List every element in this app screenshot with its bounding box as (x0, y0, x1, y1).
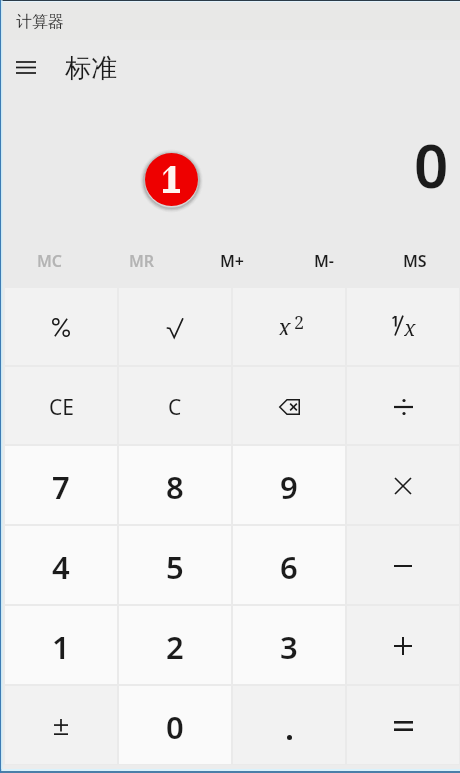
button[interactable]: 7 (5, 446, 117, 524)
button[interactable]: M- (278, 230, 369, 287)
button[interactable]: Decimal point (233, 686, 345, 764)
button[interactable]: C (119, 367, 231, 444)
button[interactable]: CE (5, 367, 117, 444)
button[interactable]: Plus (347, 606, 459, 684)
button[interactable]: 0 (119, 686, 231, 764)
staticText: 0 (414, 124, 449, 206)
staticText: 8 (166, 466, 184, 508)
staticText: 计算器 (16, 12, 64, 32)
button[interactable]: 5 (119, 526, 231, 604)
button[interactable]: 8 (119, 446, 231, 524)
staticText: MS (403, 250, 427, 272)
button[interactable]: Multiply (347, 446, 459, 524)
button[interactable]: Square root (119, 288, 231, 365)
button[interactable]: x squared (233, 288, 345, 365)
staticText: C (168, 393, 182, 422)
button[interactable]: 1 (5, 606, 117, 684)
staticText: 3 (280, 626, 298, 668)
staticText: 标准 (65, 52, 117, 85)
staticText: 7 (52, 466, 70, 508)
button[interactable]: One over x (347, 288, 459, 365)
staticText: M+ (220, 250, 245, 272)
staticText: 2 (166, 626, 184, 668)
button[interactable]: Percent (5, 288, 117, 365)
staticText: 0 (166, 706, 184, 748)
button[interactable]: Minus (347, 526, 459, 604)
button[interactable]: Menu (6, 48, 46, 86)
button[interactable]: Backspace (233, 367, 345, 444)
staticText: M- (314, 250, 334, 272)
staticText: 2 (294, 310, 305, 334)
button[interactable]: MC (4, 230, 96, 287)
button[interactable]: 3 (233, 606, 345, 684)
staticText: MR (129, 250, 155, 272)
button[interactable]: MR (96, 230, 187, 287)
staticText: 9 (280, 466, 298, 508)
staticText: 5 (166, 546, 184, 588)
staticText: x (404, 314, 416, 336)
button[interactable]: Plus minus (5, 686, 117, 764)
button[interactable]: Divide (347, 367, 459, 444)
button[interactable]: 9 (233, 446, 345, 524)
staticText: 1 (52, 626, 70, 668)
button[interactable]: M+ (187, 230, 278, 287)
staticText: MC (37, 250, 63, 272)
button[interactable]: MS (369, 230, 460, 287)
button[interactable]: 4 (5, 526, 117, 604)
staticText: 6 (280, 546, 298, 588)
staticText: CE (49, 393, 74, 422)
button[interactable]: Equals (347, 686, 459, 764)
staticText: 4 (52, 546, 70, 588)
staticText: x (278, 311, 291, 335)
button[interactable]: 6 (233, 526, 345, 604)
button[interactable]: 2 (119, 606, 231, 684)
